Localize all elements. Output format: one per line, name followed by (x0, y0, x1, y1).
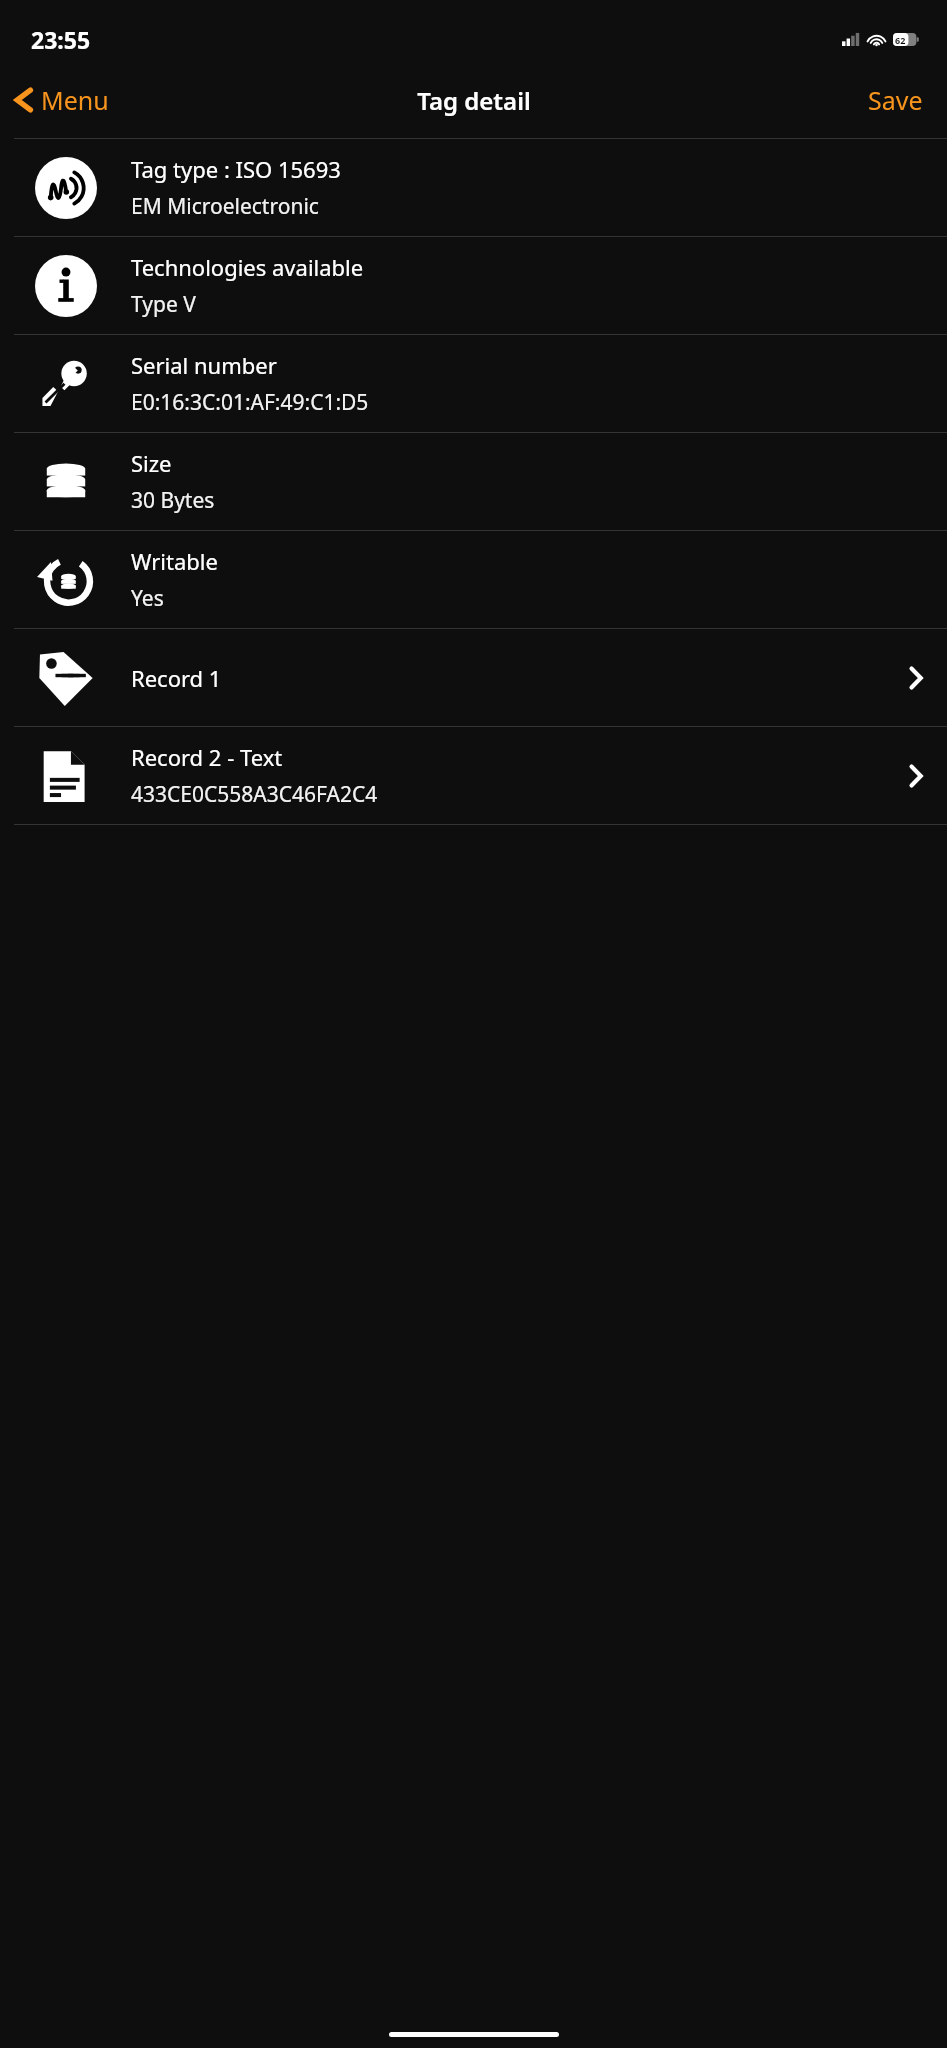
staticText: 23:55 (31, 24, 91, 55)
staticText: Record 2 - Text (131, 742, 283, 772)
staticText: 30 Bytes (131, 486, 215, 515)
staticText: Tag detail (417, 84, 531, 117)
staticText: Type V (131, 290, 196, 319)
button[interactable]: Record 1 (0, 629, 947, 726)
button[interactable]: Record 2 - Text (0, 727, 947, 824)
staticText: Serial number (131, 350, 277, 380)
button[interactable]: Menu (0, 72, 121, 128)
button[interactable]: Save (844, 72, 947, 128)
staticText: Save (868, 83, 923, 117)
button[interactable]: Size (0, 433, 947, 530)
staticText: Writable (131, 546, 218, 576)
button[interactable]: Writable (0, 531, 947, 628)
staticText: Size (131, 448, 172, 478)
staticText: EM Microelectronic (131, 192, 319, 221)
button[interactable]: Technologies available (0, 237, 947, 334)
staticText: Menu (41, 83, 109, 117)
staticText: 62 (895, 34, 906, 46)
staticText: Yes (131, 584, 164, 613)
staticText: Technologies available (131, 252, 364, 282)
staticText: Tag type : ISO 15693 (131, 154, 341, 184)
other: Open record (885, 727, 947, 824)
staticText: Record 1 (131, 663, 222, 693)
staticText: 433CE0C558A3C46FA2C4 (131, 780, 378, 809)
button[interactable]: Serial number (0, 335, 947, 432)
staticText: E0:16:3C:01:AF:49:C1:D5 (131, 388, 369, 417)
button[interactable]: Tag type : ISO 15693 (0, 139, 947, 236)
other: Open record (885, 629, 947, 726)
